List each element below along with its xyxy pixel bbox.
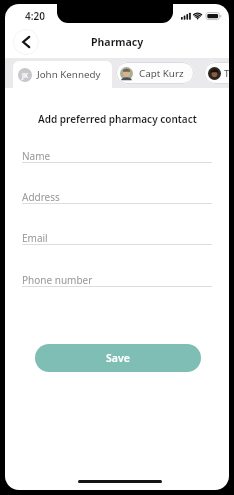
staticText: Name: [22, 149, 51, 161]
button[interactable]: Name: [22, 149, 172, 161]
staticText: 4:20: [25, 9, 45, 22]
button[interactable]: Capt Kurz: [116, 62, 194, 84]
button[interactable]: Tig: [204, 62, 229, 84]
staticText: Address: [22, 190, 60, 202]
button[interactable]: Email: [22, 231, 172, 243]
button[interactable]: JK: [13, 61, 112, 88]
staticText: Save: [106, 351, 130, 365]
staticText: JK: [22, 71, 28, 80]
button[interactable]: [13, 29, 39, 55]
button[interactable]: Address: [22, 190, 172, 202]
staticText: Pharmacy: [91, 35, 144, 49]
staticText: Add preferred pharmacy contact: [38, 112, 197, 126]
staticText: Tig: [224, 67, 229, 80]
staticText: Email: [22, 231, 48, 243]
staticText: Phone number: [22, 273, 93, 285]
staticText: John Kennedy: [37, 68, 101, 81]
button[interactable]: Save: [35, 344, 201, 372]
staticText: Capt Kurz: [139, 67, 184, 80]
button[interactable]: Phone number: [22, 273, 172, 285]
